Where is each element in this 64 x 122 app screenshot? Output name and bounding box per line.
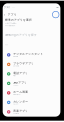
- button[interactable]: カレンダー: [3, 98, 60, 107]
- staticText: よく使うアプリを標準の: [5, 23, 16, 24]
- staticText: ブラウザアプリ: [13, 62, 34, 65]
- staticText: 標準のアプリを選択: [5, 18, 32, 21]
- button[interactable]: ‹ アプリ: [3, 13, 17, 16]
- staticText: アプリに設定できます。: [5, 25, 16, 26]
- staticText: YT Music: [13, 113, 19, 114]
- button[interactable]: デジタルアシスタント: [3, 50, 60, 60]
- staticText: カレンダー: [13, 100, 28, 103]
- staticText: SMS アプリ: [13, 81, 27, 84]
- staticText: カレンダー: [13, 103, 18, 105]
- staticText: ‹ アプリ: [4, 13, 17, 16]
- staticText: デジタルアシスタント: [13, 52, 43, 56]
- button[interactable]: Account: [52, 11, 60, 18]
- button[interactable]: 電話アプリ: [3, 69, 60, 79]
- staticText: メッセージ: [13, 84, 18, 86]
- button[interactable]: 音楽アプリ: [3, 107, 60, 117]
- staticText: Samsungのアプリを探す: [5, 33, 37, 37]
- staticText: 音楽アプリ: [13, 109, 28, 113]
- staticText: • • •: [12, 6, 15, 8]
- staticText: Chrome: [13, 65, 19, 67]
- button[interactable]: ホーム画面: [3, 88, 60, 98]
- staticText: ホーム画面: [13, 90, 28, 94]
- button[interactable]: Samsungのアプリを探す: [3, 33, 60, 37]
- staticText: One UI ホーム: [13, 94, 20, 95]
- staticText: 電話アプリ: [13, 71, 28, 75]
- button[interactable]: SMS アプリ: [3, 79, 60, 88]
- button[interactable]: ブラウザアプリ: [3, 60, 60, 69]
- staticText: ▂▄ ▮: [56, 6, 59, 8]
- staticText: Google: [13, 56, 18, 57]
- staticText: 電話: [13, 75, 15, 76]
- staticText: 9:41: [4, 5, 11, 9]
